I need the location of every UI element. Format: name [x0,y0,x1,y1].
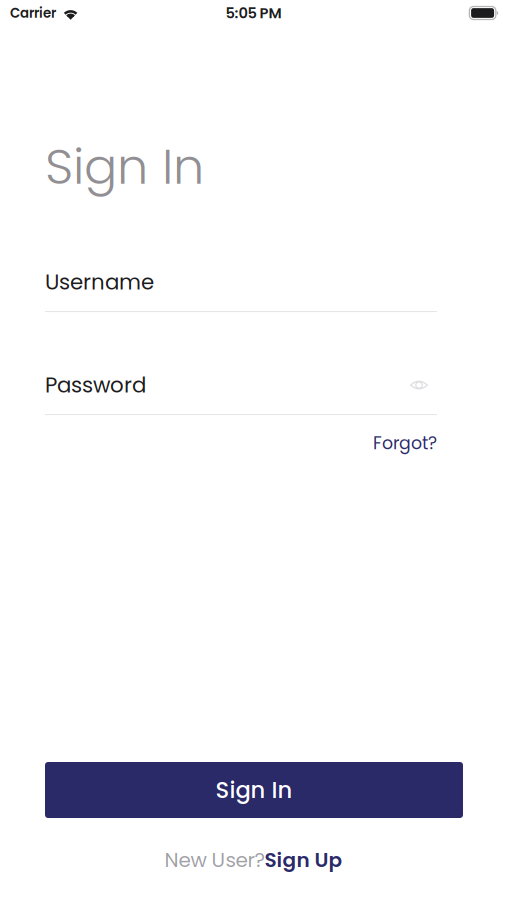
staticText: Password [45,370,146,400]
button[interactable]: New User? [164,842,342,878]
staticText: Carrier [10,4,56,22]
staticText: Sign In [215,774,292,806]
button[interactable]: Sign In [45,762,463,818]
staticText: Sign Up [264,846,342,874]
button[interactable]: Forgot? [373,427,437,459]
staticText: Sign In [45,132,204,201]
staticText: Forgot? [373,431,437,455]
button[interactable]: Show password [400,374,437,396]
staticText: 5:05 PM [225,3,281,23]
staticText: Username [45,267,154,297]
staticText: New User? [164,846,264,874]
